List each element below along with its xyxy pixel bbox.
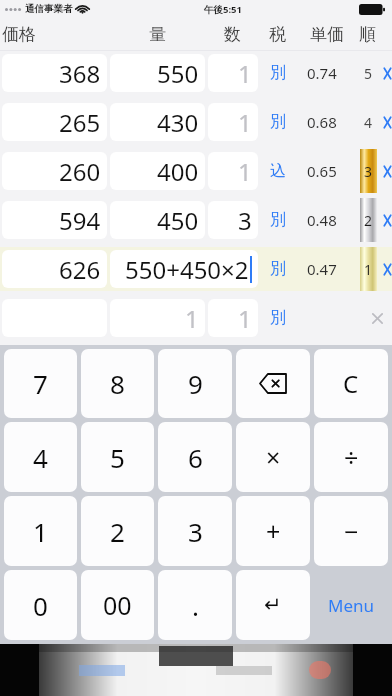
staticText: 込 — [270, 161, 286, 181]
staticText: 5 — [364, 64, 373, 83]
button[interactable]: 450 — [110, 201, 205, 239]
staticText: 7 — [33, 366, 48, 401]
button[interactable]: 別 — [265, 51, 291, 95]
button[interactable]: . — [158, 570, 232, 640]
staticText: 368 — [59, 57, 101, 90]
staticText: 3 — [238, 204, 252, 237]
staticText: 2 — [364, 211, 373, 230]
button[interactable]: 3 — [208, 201, 258, 239]
staticText: 626 — [59, 253, 101, 286]
button[interactable]: 400 — [110, 152, 205, 190]
staticText: ÷ — [344, 440, 359, 474]
staticText: 1 — [238, 155, 252, 188]
button[interactable]: − — [314, 496, 388, 566]
button[interactable]: 260 — [2, 152, 107, 190]
button[interactable]: ÷ — [314, 422, 388, 492]
button[interactable]: 7 — [4, 349, 77, 418]
staticText: 0 — [33, 588, 48, 623]
staticText: 265 — [59, 106, 101, 139]
button[interactable]: 1 — [208, 103, 258, 141]
button[interactable]: C — [314, 349, 388, 418]
staticText: 別 — [270, 63, 286, 83]
staticText: 数 — [224, 24, 241, 45]
staticText: 別 — [270, 259, 286, 279]
button[interactable]: × — [236, 422, 310, 492]
button[interactable]: 550+450×2 — [110, 250, 258, 288]
button[interactable]: 別 — [265, 100, 291, 144]
staticText: 550+450×2 — [125, 253, 249, 286]
button[interactable]: 込 — [265, 149, 291, 193]
button[interactable]: 430 — [110, 103, 205, 141]
staticText: 別 — [270, 112, 286, 132]
staticText: 0.47 — [307, 259, 337, 279]
button[interactable]: 8 — [81, 349, 154, 418]
button[interactable]: 3 — [158, 496, 232, 566]
staticText: 5 — [110, 440, 125, 475]
staticText: 8 — [110, 366, 125, 401]
staticText: 1 — [33, 514, 48, 549]
button[interactable]: 1 — [208, 152, 258, 190]
button[interactable]: Delete row — [383, 51, 392, 95]
staticText: . — [192, 588, 199, 623]
staticText: 9 — [188, 366, 203, 401]
staticText: × — [266, 440, 281, 474]
staticText: 1 — [238, 302, 252, 335]
button[interactable]: 別 — [265, 247, 291, 291]
button[interactable]: + — [236, 496, 310, 566]
staticText: 0.48 — [307, 210, 337, 230]
button[interactable]: 00 — [81, 570, 154, 640]
staticText: 594 — [59, 204, 101, 237]
staticText: 450 — [157, 204, 199, 237]
staticText: 3 — [188, 514, 203, 549]
button[interactable]: 265 — [2, 103, 107, 141]
button[interactable]: 2 — [81, 496, 154, 566]
staticText: − — [344, 514, 359, 548]
button[interactable]: 626 — [2, 250, 107, 288]
button[interactable]: Delete row — [383, 247, 392, 291]
button[interactable]: 550 — [110, 54, 205, 92]
staticText: 4 — [364, 113, 373, 132]
button[interactable]: 5 — [81, 422, 154, 492]
staticText: C — [343, 367, 359, 400]
button[interactable]: Backspace — [236, 349, 310, 418]
staticText: 0.68 — [307, 112, 337, 132]
staticText: 260 — [59, 155, 101, 188]
staticText: 3 — [364, 162, 373, 181]
staticText: 6 — [188, 440, 203, 475]
button[interactable]: 6 — [158, 422, 232, 492]
staticText: + — [266, 514, 281, 548]
staticText: 税 — [269, 24, 286, 45]
button[interactable]: 1 — [4, 496, 77, 566]
staticText: 2 — [110, 514, 125, 549]
button[interactable]: Return — [236, 570, 310, 640]
button[interactable]: 9 — [158, 349, 232, 418]
button[interactable]: 1 — [208, 299, 258, 337]
button[interactable]: Delete row — [383, 198, 392, 242]
staticText: 通信事業者 — [25, 3, 73, 15]
staticText: 単価 — [310, 24, 344, 45]
staticText: 550 — [157, 57, 199, 90]
staticText: 別 — [270, 210, 286, 230]
staticText: 0.74 — [307, 63, 337, 83]
button[interactable]: 別 — [265, 296, 291, 340]
button[interactable]: 0 — [4, 570, 77, 640]
staticText: 午後5:51 — [204, 3, 242, 16]
button[interactable]: Delete row — [383, 100, 392, 144]
button[interactable]: 594 — [2, 201, 107, 239]
button[interactable]: Delete row — [383, 149, 392, 193]
button[interactable]: Delete row — [362, 296, 392, 340]
button[interactable]: 368 — [2, 54, 107, 92]
button[interactable]: 別 — [265, 198, 291, 242]
staticText: 0.65 — [307, 161, 337, 181]
button[interactable]: 1 — [208, 54, 258, 92]
button[interactable]: Menu — [314, 570, 388, 640]
staticText: 1 — [364, 260, 373, 279]
button[interactable]: 1 — [110, 299, 205, 337]
button[interactable]: 4 — [4, 422, 77, 492]
staticText: 別 — [270, 308, 286, 328]
staticText: 1 — [238, 57, 252, 90]
staticText: 1 — [185, 302, 199, 335]
staticText: 400 — [157, 155, 199, 188]
staticText: Menu — [328, 594, 375, 617]
